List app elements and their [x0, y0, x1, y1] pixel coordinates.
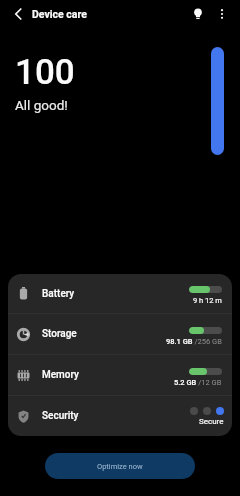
button[interactable]: Security: [8, 396, 232, 436]
staticText: 9 h 12 m: [193, 296, 222, 305]
button[interactable]: Battery: [8, 274, 232, 313]
button[interactable]: Storage: [8, 314, 232, 354]
staticText: 5.2 GB /12 GB: [174, 378, 222, 387]
button[interactable]: [187, 3, 209, 25]
staticText: Device care: [32, 8, 87, 20]
button[interactable]: Optimize now: [45, 453, 195, 479]
staticText: Battery: [42, 288, 75, 300]
staticText: 100: [15, 52, 75, 93]
button[interactable]: Memory: [8, 355, 232, 395]
button[interactable]: [212, 4, 232, 24]
staticText: Memory: [42, 369, 79, 381]
staticText: All good!: [15, 97, 68, 113]
staticText: Optimize now: [97, 462, 143, 471]
staticText: Storage: [42, 328, 77, 340]
button[interactable]: [9, 4, 29, 24]
staticText: 98.1 GB /256 GB: [166, 337, 222, 346]
staticText: Security: [42, 410, 79, 422]
staticText: Secure: [199, 417, 224, 426]
